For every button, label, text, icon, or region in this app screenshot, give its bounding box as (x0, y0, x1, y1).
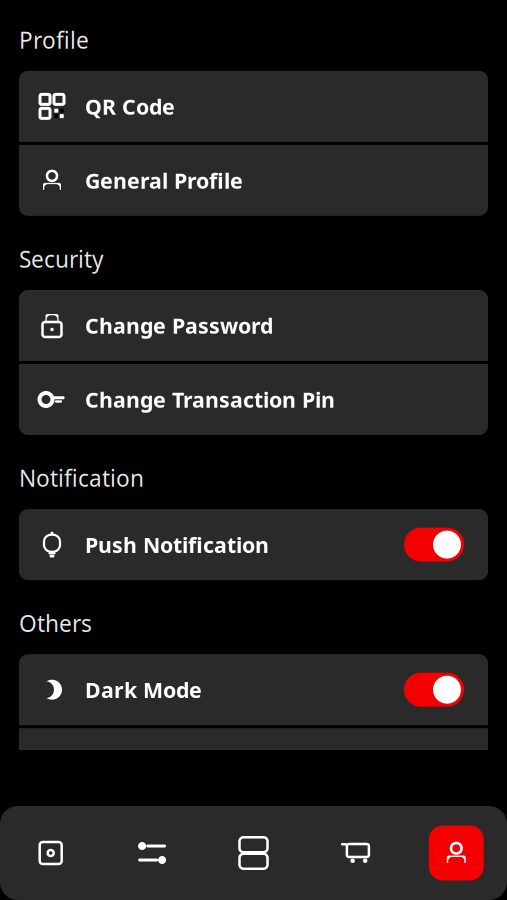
button[interactable]: Logout (19, 728, 488, 799)
button[interactable]: Change Password (19, 290, 488, 361)
button[interactable]: Shop (304, 806, 406, 900)
staticText: Others (19, 608, 92, 638)
staticText: Change Password (85, 311, 273, 340)
staticText: Change Transaction Pin (85, 385, 335, 414)
button[interactable]: Profile (406, 806, 507, 900)
button[interactable]: Change Transaction Pin (19, 364, 488, 435)
staticText: QR Code (85, 92, 175, 120)
button[interactable]: Transfer (101, 806, 203, 900)
button[interactable]: QR Code (19, 71, 488, 142)
button[interactable]: General Profile (19, 145, 488, 216)
staticText: Push Notification (85, 530, 269, 559)
button[interactable]: Dark Mode (19, 654, 488, 725)
staticText: Notification (19, 463, 144, 493)
staticText: Security (19, 244, 104, 274)
button[interactable]: Push Notification (19, 509, 488, 580)
staticText: Profile (19, 25, 89, 55)
button[interactable]: Home (0, 806, 101, 900)
staticText: Dark Mode (85, 675, 202, 704)
staticText: General Profile (85, 166, 243, 194)
button[interactable]: Cards (203, 806, 304, 900)
